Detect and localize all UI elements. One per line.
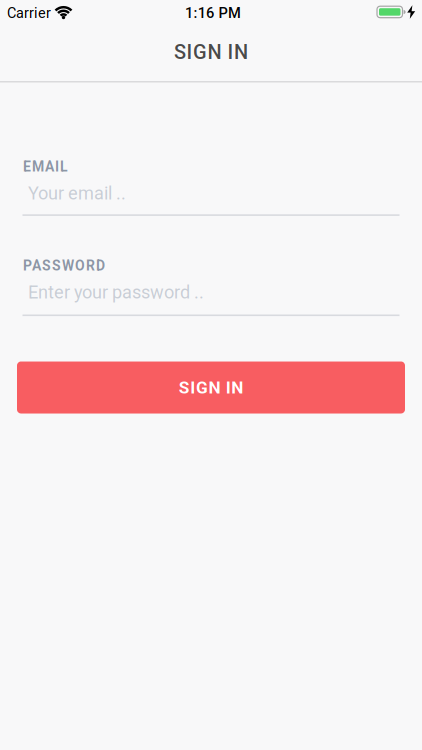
staticText: SIGN IN xyxy=(174,40,248,64)
staticText: Enter your password .. xyxy=(28,282,204,303)
staticText: Your email .. xyxy=(28,183,126,204)
staticText: SIGN IN xyxy=(179,377,243,398)
staticText: EMAIL xyxy=(23,158,68,175)
staticText: PASSWORD xyxy=(23,257,105,274)
staticText: 1:16 PM xyxy=(185,4,241,22)
staticText: Carrier xyxy=(7,5,51,21)
